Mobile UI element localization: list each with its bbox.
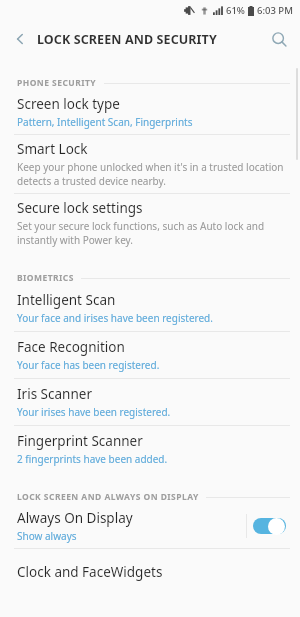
staticText: instantly with Power key. bbox=[17, 233, 133, 247]
staticText: 2 fingerprints have been added. bbox=[17, 452, 168, 466]
button[interactable]: Clock and FaceWidgets bbox=[0, 549, 300, 595]
button[interactable]: Search bbox=[264, 24, 294, 54]
staticText: Smart Lock bbox=[17, 140, 88, 158]
staticText: Clock and FaceWidgets bbox=[17, 563, 163, 581]
staticText: 61% bbox=[226, 4, 245, 17]
button[interactable]: Iris Scanner bbox=[0, 379, 300, 425]
staticText: Always On Display bbox=[17, 509, 133, 527]
staticText: Iris Scanner bbox=[17, 385, 92, 403]
staticText: LOCK SCREEN AND ALWAYS ON DISPLAY bbox=[17, 491, 199, 503]
staticText: PHONE SECURITY bbox=[17, 77, 97, 89]
staticText: Face Recognition bbox=[17, 338, 125, 356]
button[interactable]: Secure lock settings bbox=[0, 194, 300, 252]
button[interactable]: Back bbox=[6, 25, 34, 53]
staticText: LOCK SCREEN AND SECURITY bbox=[37, 31, 217, 48]
button[interactable]: Face Recognition bbox=[0, 332, 300, 378]
staticText: Your face and irises have been registere… bbox=[17, 311, 213, 325]
button[interactable]: Screen lock type bbox=[0, 90, 300, 134]
staticText: Secure lock settings bbox=[17, 199, 143, 217]
staticText: BIOMETRICS bbox=[17, 272, 74, 284]
button[interactable]: Always On Display bbox=[0, 504, 300, 548]
staticText: Set your secure lock functions, such as … bbox=[17, 219, 288, 233]
button[interactable]: Smart Lock bbox=[0, 135, 300, 193]
staticText: Intelligent Scan bbox=[17, 291, 116, 309]
button[interactable]: Fingerprint Scanner bbox=[0, 426, 300, 472]
staticText: Your face has been registered. bbox=[17, 358, 160, 372]
staticText: Show always bbox=[17, 529, 77, 543]
staticText: Pattern, Intelligent Scan, Fingerprints bbox=[17, 115, 193, 129]
staticText: 6:03 PM bbox=[257, 4, 293, 17]
staticText: Your irises have been registered. bbox=[17, 405, 171, 419]
staticText: detects a trusted device nearby. bbox=[17, 174, 166, 188]
button[interactable]: Intelligent Scan bbox=[0, 285, 300, 331]
button[interactable]: Always On Display toggle bbox=[252, 516, 286, 536]
staticText: Keep your phone unlocked when it's in a … bbox=[17, 160, 288, 174]
staticText: Screen lock type bbox=[17, 95, 120, 113]
staticText: Fingerprint Scanner bbox=[17, 432, 143, 450]
